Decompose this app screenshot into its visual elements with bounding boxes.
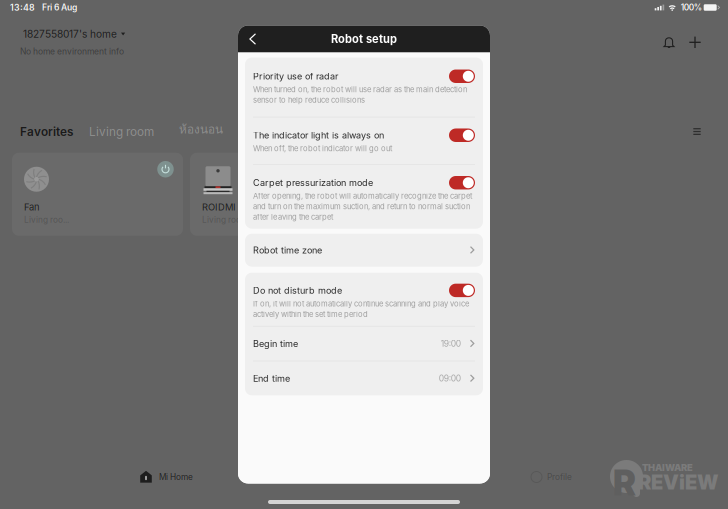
staticText: Robot setup xyxy=(331,32,397,46)
button[interactable]: The indicator light is always on xyxy=(245,117,483,164)
button[interactable]: Robot time zone xyxy=(245,234,483,267)
button[interactable]: Begin time xyxy=(245,327,483,361)
button[interactable]: ROIDMI E xyxy=(190,153,361,236)
staticText: Profile xyxy=(547,472,572,482)
staticText: Robot time zone xyxy=(253,245,322,256)
staticText: Carpet pressurization mode xyxy=(253,177,373,188)
staticText: ROIDMI E xyxy=(202,201,245,213)
button[interactable]: Notifications xyxy=(656,29,682,55)
staticText: If on, it will not automatically continu… xyxy=(253,299,469,319)
staticText: When turned on, the robot will use radar… xyxy=(253,85,467,105)
button[interactable]: Do not disturb mode xyxy=(245,273,483,326)
staticText: Living roo... xyxy=(24,215,69,225)
staticText: After opening, the robot will automatica… xyxy=(253,191,472,222)
staticText: THAIWARE xyxy=(642,462,693,473)
button[interactable]: ห้องนอน xyxy=(179,120,223,139)
staticText: Priority use of radar xyxy=(253,71,338,82)
staticText: Living room xyxy=(89,124,154,139)
button[interactable]: Menu xyxy=(687,122,707,142)
button[interactable]: Profile xyxy=(491,465,612,489)
staticText: Begin time xyxy=(253,338,298,349)
staticText: Fri 6 Aug xyxy=(42,2,77,13)
staticText: No home environment info xyxy=(20,46,124,57)
staticText: R xyxy=(613,462,636,504)
button[interactable]: Priority use of radar xyxy=(245,57,483,117)
staticText: Mi Home xyxy=(159,472,193,482)
staticText: When off, the robot indicator will go ou… xyxy=(253,144,392,153)
staticText: 19:00 xyxy=(441,338,461,349)
button[interactable]: Back xyxy=(238,25,268,52)
button[interactable]: Fan xyxy=(12,153,183,236)
button[interactable]: Mi Home xyxy=(100,465,233,489)
staticText: End time xyxy=(253,373,290,384)
button[interactable]: End time xyxy=(245,361,483,395)
button[interactable]: Living room xyxy=(89,124,154,139)
staticText: 1827558017's home xyxy=(23,28,117,40)
staticText: Living roo. xyxy=(202,215,243,225)
button[interactable]: Carpet pressurization mode xyxy=(245,165,483,229)
staticText: 13:48 xyxy=(10,2,35,13)
staticText: REViEW xyxy=(638,470,719,494)
button[interactable]: Favorites xyxy=(20,124,73,139)
button[interactable]: Add device xyxy=(682,29,708,55)
staticText: 100% xyxy=(681,2,702,12)
staticText: Fan xyxy=(24,201,40,213)
staticText: The indicator light is always on xyxy=(253,130,384,141)
staticText: 09:00 xyxy=(439,373,461,383)
staticText: ห้องนอน xyxy=(179,120,223,139)
staticText: Favorites xyxy=(20,124,73,139)
staticText: Do not disturb mode xyxy=(253,285,342,296)
